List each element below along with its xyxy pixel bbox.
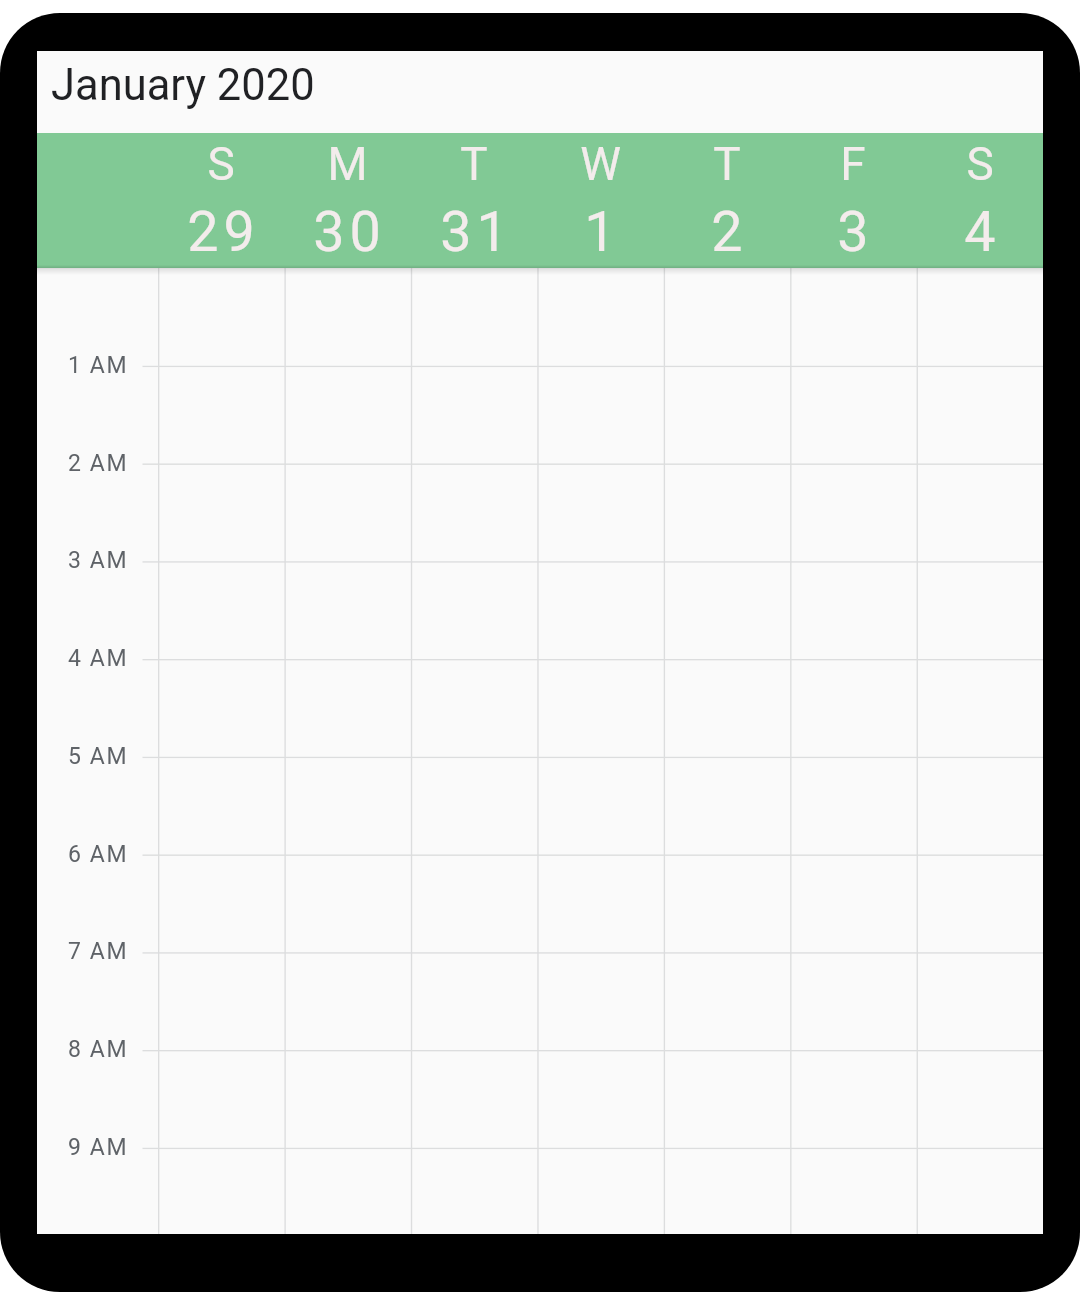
button[interactable]: T <box>411 133 537 268</box>
staticText: T <box>460 137 488 191</box>
staticText: 4 <box>964 199 1001 264</box>
button[interactable]: Saturday 4 <box>917 268 1043 1234</box>
button[interactable]: S <box>917 133 1043 268</box>
staticText: 2 AM <box>68 450 129 477</box>
staticText: T <box>713 137 741 191</box>
button[interactable]: Wednesday 1 <box>537 268 663 1234</box>
staticText: 7 AM <box>68 938 129 965</box>
button[interactable]: Monday 30 <box>284 268 410 1234</box>
staticText: 3 AM <box>68 547 129 574</box>
staticText: 29 <box>187 199 260 264</box>
staticText: January 2020 <box>51 60 315 111</box>
staticText: 5 AM <box>68 743 129 770</box>
staticText: 1 AM <box>68 352 129 379</box>
staticText: 4 AM <box>68 645 129 672</box>
staticText: S <box>966 137 994 191</box>
staticText: 6 AM <box>68 841 129 868</box>
staticText: 1 <box>584 199 621 264</box>
staticText: 30 <box>313 199 386 264</box>
button[interactable]: M <box>284 133 410 268</box>
staticText: 2 <box>711 199 748 264</box>
staticText: 9 AM <box>68 1134 129 1161</box>
staticText: 31 <box>440 199 513 264</box>
staticText: F <box>840 137 866 191</box>
button[interactable]: F <box>790 133 916 268</box>
button[interactable]: W <box>537 133 663 268</box>
staticText: S <box>207 137 235 191</box>
button[interactable]: January 2020 <box>37 51 1043 133</box>
button[interactable]: Thursday 2 <box>664 268 790 1234</box>
staticText: 8 AM <box>68 1036 129 1063</box>
button[interactable]: T <box>664 133 790 268</box>
button[interactable]: S <box>158 133 284 268</box>
staticText: W <box>580 137 621 191</box>
button[interactable]: Tuesday 31 <box>411 268 537 1234</box>
button[interactable]: Friday 3 <box>790 268 916 1234</box>
staticText: M <box>327 137 368 191</box>
button[interactable]: Sunday 29 <box>158 268 284 1234</box>
staticText: 3 <box>837 199 874 264</box>
